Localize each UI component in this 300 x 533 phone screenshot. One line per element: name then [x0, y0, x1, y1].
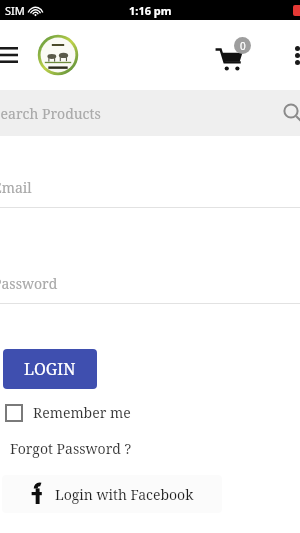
button[interactable]: Email: [0, 160, 300, 208]
button[interactable]: Cart: [211, 33, 255, 77]
button[interactable]: Password: [0, 256, 300, 304]
staticText: 1:16 pm: [129, 3, 172, 18]
button[interactable]: Menu: [0, 40, 22, 70]
button[interactable]: Forgot Password ?: [10, 439, 132, 458]
button[interactable]: More options: [282, 40, 300, 70]
staticText: Login with Facebook: [55, 485, 194, 504]
button[interactable]: LOGIN: [3, 349, 97, 389]
button[interactable]: Login with Facebook: [2, 475, 222, 513]
button[interactable]: Farm Products logo: [36, 33, 80, 77]
other: Search: [278, 98, 300, 128]
staticText: Password: [0, 274, 58, 293]
staticText: SIM: [5, 3, 25, 18]
button[interactable]: Search Products: [0, 90, 300, 136]
staticText: 0: [240, 39, 246, 53]
staticText: Email: [0, 178, 32, 197]
staticText: LOGIN: [24, 358, 76, 380]
staticText: Search Products: [0, 104, 101, 123]
staticText: Forgot Password ?: [10, 439, 132, 458]
staticText: Remember me: [33, 403, 131, 422]
button[interactable]: Remember me: [5, 403, 131, 422]
